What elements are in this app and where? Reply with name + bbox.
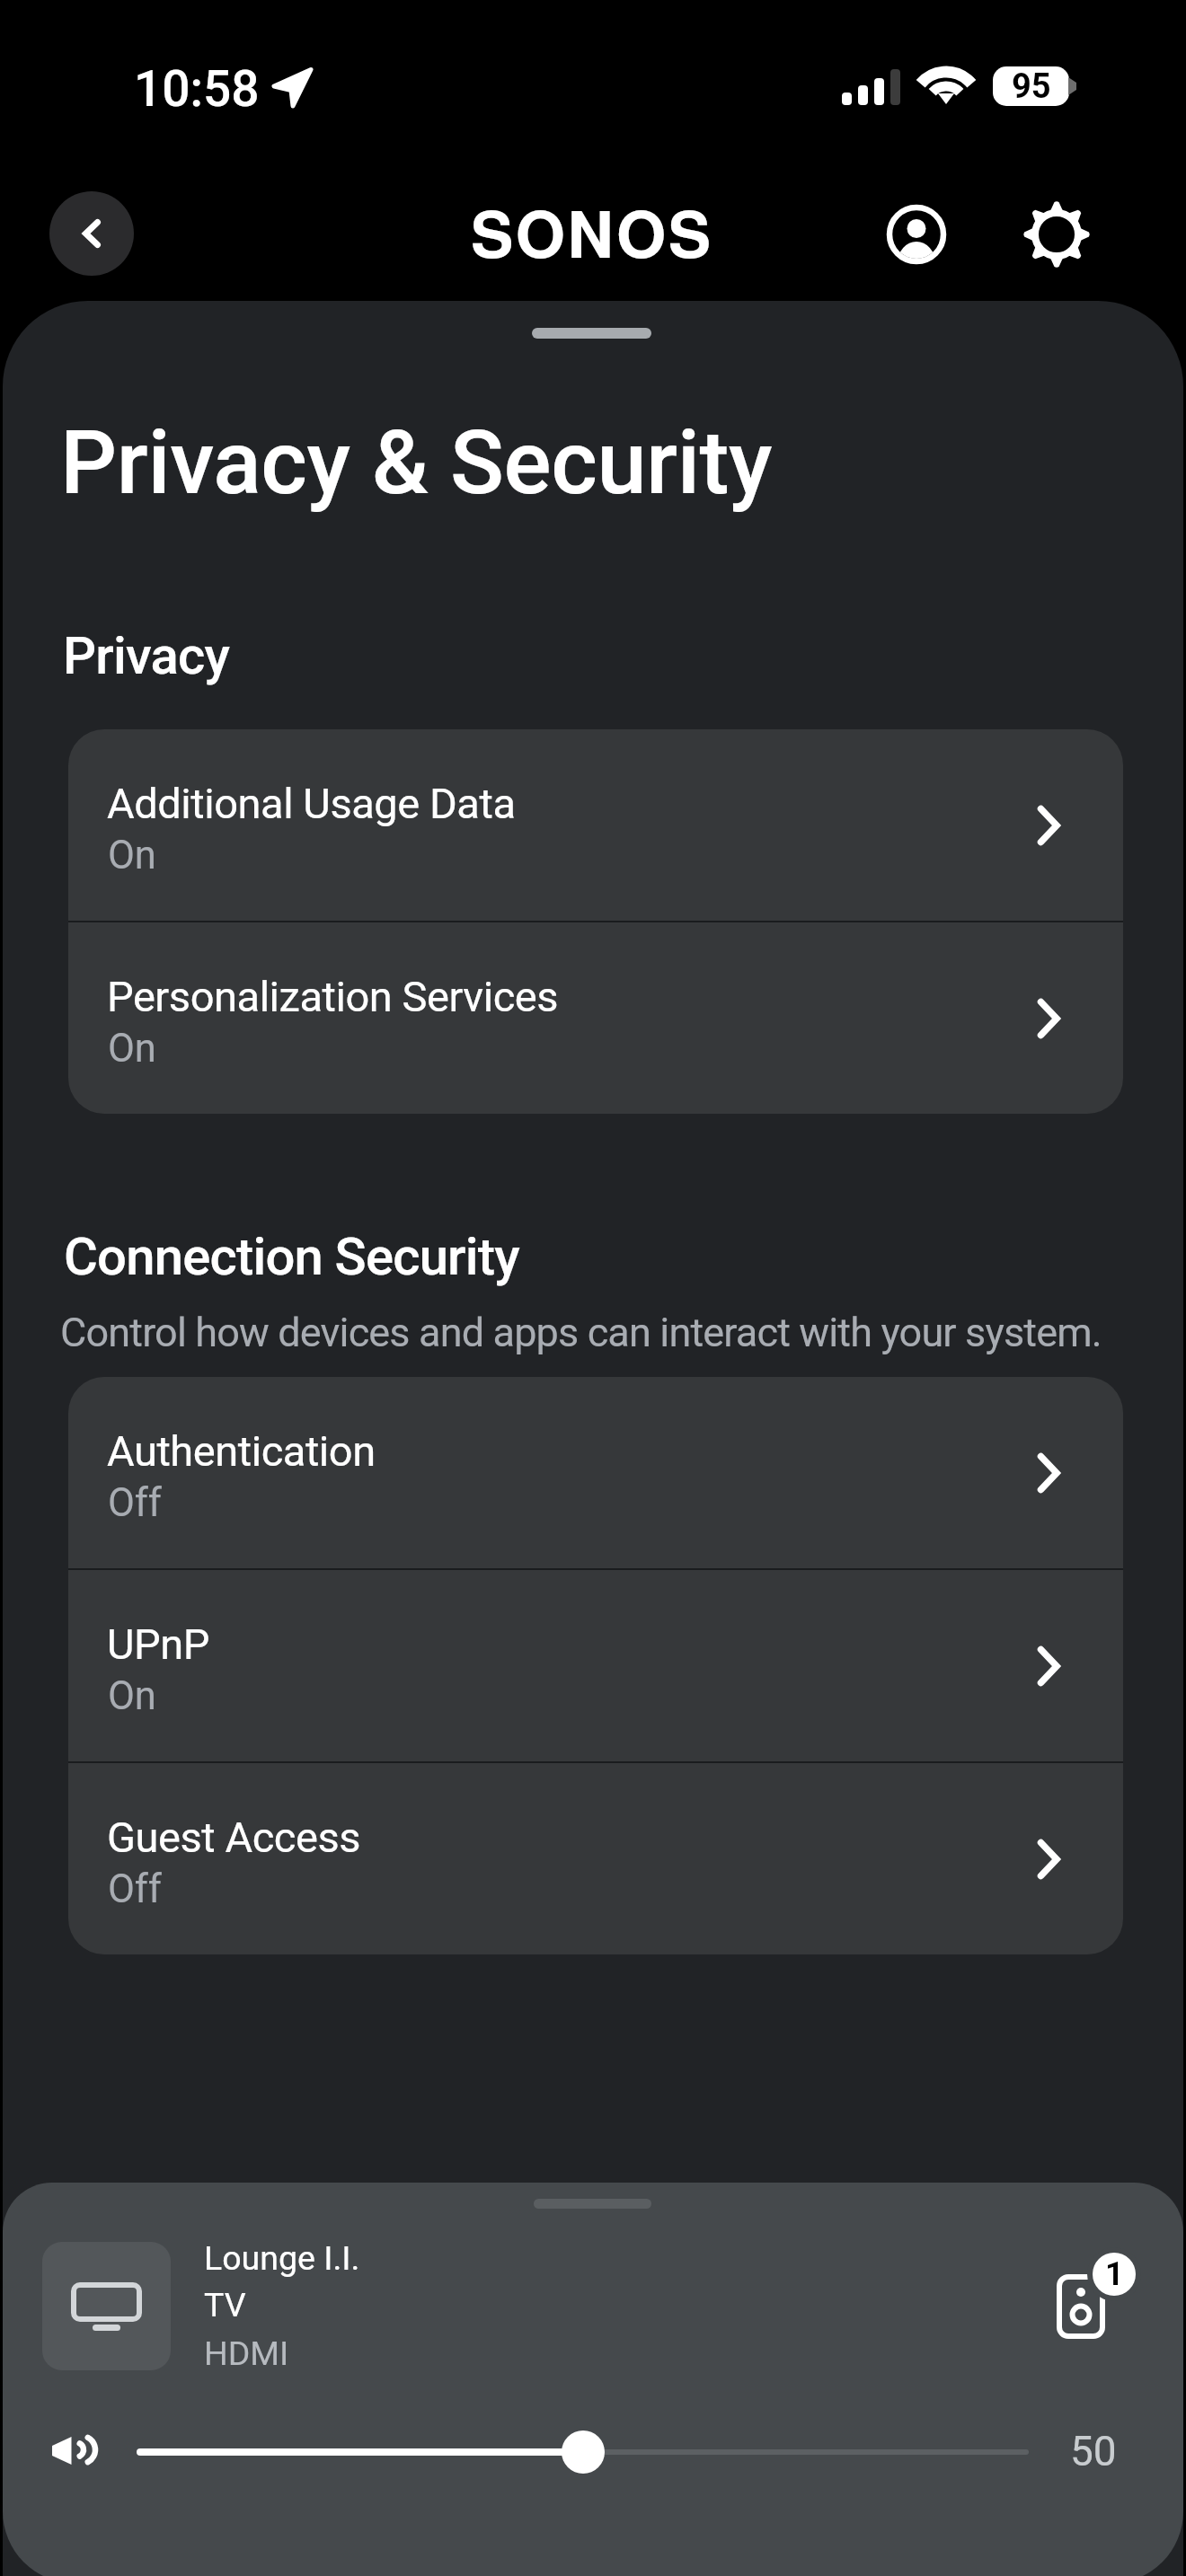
staticText: 50 <box>1070 2427 1117 2475</box>
button[interactable]: Settings <box>1024 202 1089 267</box>
staticText: 1 <box>1105 2255 1124 2293</box>
staticText: Off <box>108 1866 162 1912</box>
staticText: Connection Security <box>64 1226 519 1287</box>
staticText: On <box>108 833 156 878</box>
staticText: Control how devices and apps can interac… <box>60 1309 1102 1356</box>
button[interactable]: UPnP <box>68 1570 1123 1761</box>
staticText: Authentication <box>107 1426 376 1476</box>
staticText: Off <box>108 1480 162 1526</box>
staticText: Lounge I.I. <box>204 2238 360 2278</box>
staticText: On <box>108 1026 156 1072</box>
staticText: HDMI <box>204 2333 289 2373</box>
staticText: TV <box>204 2285 246 2325</box>
staticText: Privacy <box>63 625 229 686</box>
staticText: 10:58 <box>134 60 260 118</box>
staticText: On <box>108 1673 156 1719</box>
staticText: UPnP <box>107 1619 209 1669</box>
button[interactable]: Back <box>49 191 134 276</box>
button[interactable]: Personalization Services <box>68 922 1123 1114</box>
staticText: 95 <box>1012 66 1051 106</box>
button[interactable]: Speakers <box>1049 2259 1148 2358</box>
staticText: Privacy & Security <box>60 410 773 515</box>
button[interactable]: Authentication <box>68 1377 1123 1568</box>
staticText: Personalization Services <box>107 972 559 1021</box>
staticText: Additional Usage Data <box>107 779 516 828</box>
button[interactable]: Guest Access <box>68 1763 1123 1954</box>
staticText: Guest Access <box>107 1813 361 1862</box>
button[interactable]: Account <box>885 203 948 266</box>
staticText: SONOS <box>471 186 713 278</box>
button[interactable]: Additional Usage Data <box>68 729 1123 921</box>
